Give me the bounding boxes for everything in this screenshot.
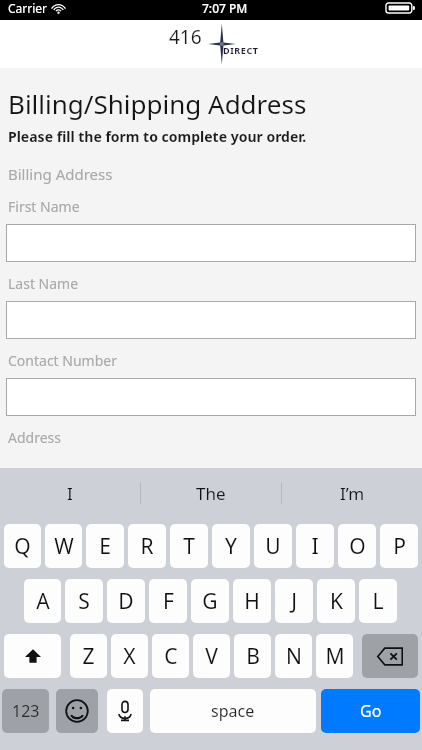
button[interactable]: Q xyxy=(4,524,41,568)
button[interactable]: L xyxy=(359,579,397,623)
button[interactable]: C xyxy=(152,634,189,678)
button[interactable]: The xyxy=(141,468,281,518)
staticText: Go xyxy=(360,700,382,722)
staticText: Please fill the form to complete your or… xyxy=(8,127,307,146)
staticText: Contact Number xyxy=(8,351,117,370)
staticText: J xyxy=(291,587,297,616)
button[interactable]: V xyxy=(193,634,230,678)
staticText: F xyxy=(163,587,174,616)
button[interactable]: Shift xyxy=(4,634,61,678)
staticText: T xyxy=(183,532,195,561)
staticText: R xyxy=(140,532,154,561)
staticText: The xyxy=(196,482,226,505)
button[interactable]: Y xyxy=(212,524,250,568)
staticText: Q xyxy=(14,532,31,561)
staticText: S xyxy=(78,587,90,616)
button[interactable] xyxy=(6,301,416,339)
staticText: M xyxy=(325,642,345,671)
staticText: D xyxy=(118,587,134,616)
staticText: G xyxy=(202,587,218,616)
button[interactable]: 123 xyxy=(2,689,49,733)
staticText: Carrier xyxy=(8,0,48,16)
staticText: 7:07 PM xyxy=(202,0,248,16)
staticText: I’m xyxy=(340,482,365,505)
button[interactable]: Emoji xyxy=(56,689,98,733)
button[interactable]: K xyxy=(317,579,355,623)
staticText: Billing/Shipping Address xyxy=(8,86,307,121)
button[interactable]: G xyxy=(191,579,229,623)
button[interactable] xyxy=(6,378,416,416)
staticText: 416 xyxy=(169,24,202,50)
button[interactable]: space xyxy=(150,689,316,733)
button[interactable]: D xyxy=(107,579,145,623)
button[interactable]: Go xyxy=(321,689,420,733)
button[interactable]: O xyxy=(338,524,376,568)
button[interactable]: X xyxy=(111,634,148,678)
button[interactable]: I xyxy=(0,468,140,518)
button[interactable]: M xyxy=(316,634,353,678)
staticText: A xyxy=(36,587,50,616)
button[interactable]: U xyxy=(254,524,292,568)
staticText: B xyxy=(246,642,260,671)
staticText: H xyxy=(244,587,260,616)
staticText: Z xyxy=(82,642,95,671)
staticText: W xyxy=(54,532,74,561)
staticText: U xyxy=(265,532,281,561)
button[interactable]: I’m xyxy=(282,468,422,518)
button[interactable]: Backspace xyxy=(362,634,418,678)
button[interactable]: J xyxy=(275,579,313,623)
button[interactable]: F xyxy=(149,579,187,623)
staticText: K xyxy=(330,587,343,616)
button[interactable]: Dictation xyxy=(107,689,143,733)
staticText: V xyxy=(205,642,218,671)
staticText: Last Name xyxy=(8,274,79,293)
button[interactable]: H xyxy=(233,579,271,623)
staticText: L xyxy=(372,587,384,616)
staticText: X xyxy=(123,642,136,671)
staticText: P xyxy=(393,532,406,561)
button[interactable]: S xyxy=(65,579,103,623)
staticText: Billing Address xyxy=(8,164,113,184)
staticText: Y xyxy=(225,532,237,561)
button[interactable]: N xyxy=(275,634,312,678)
staticText: space xyxy=(211,700,255,722)
button[interactable]: W xyxy=(45,524,82,568)
button[interactable]: T xyxy=(170,524,208,568)
staticText: I xyxy=(311,532,319,561)
button[interactable] xyxy=(6,224,416,262)
staticText: O xyxy=(349,532,366,561)
staticText: C xyxy=(164,642,178,671)
staticText: First Name xyxy=(8,197,80,216)
button[interactable]: B xyxy=(234,634,271,678)
staticText: E xyxy=(99,532,111,561)
staticText: 123 xyxy=(12,700,40,722)
staticText: DIRECT xyxy=(223,44,259,56)
button[interactable]: P xyxy=(380,524,418,568)
button[interactable]: E xyxy=(86,524,124,568)
button[interactable]: A xyxy=(24,579,61,623)
button[interactable]: I xyxy=(296,524,334,568)
button[interactable]: Z xyxy=(70,634,107,678)
staticText: I xyxy=(67,482,73,505)
button[interactable]: R xyxy=(128,524,166,568)
staticText: Address xyxy=(8,428,61,447)
staticText: N xyxy=(286,642,302,671)
